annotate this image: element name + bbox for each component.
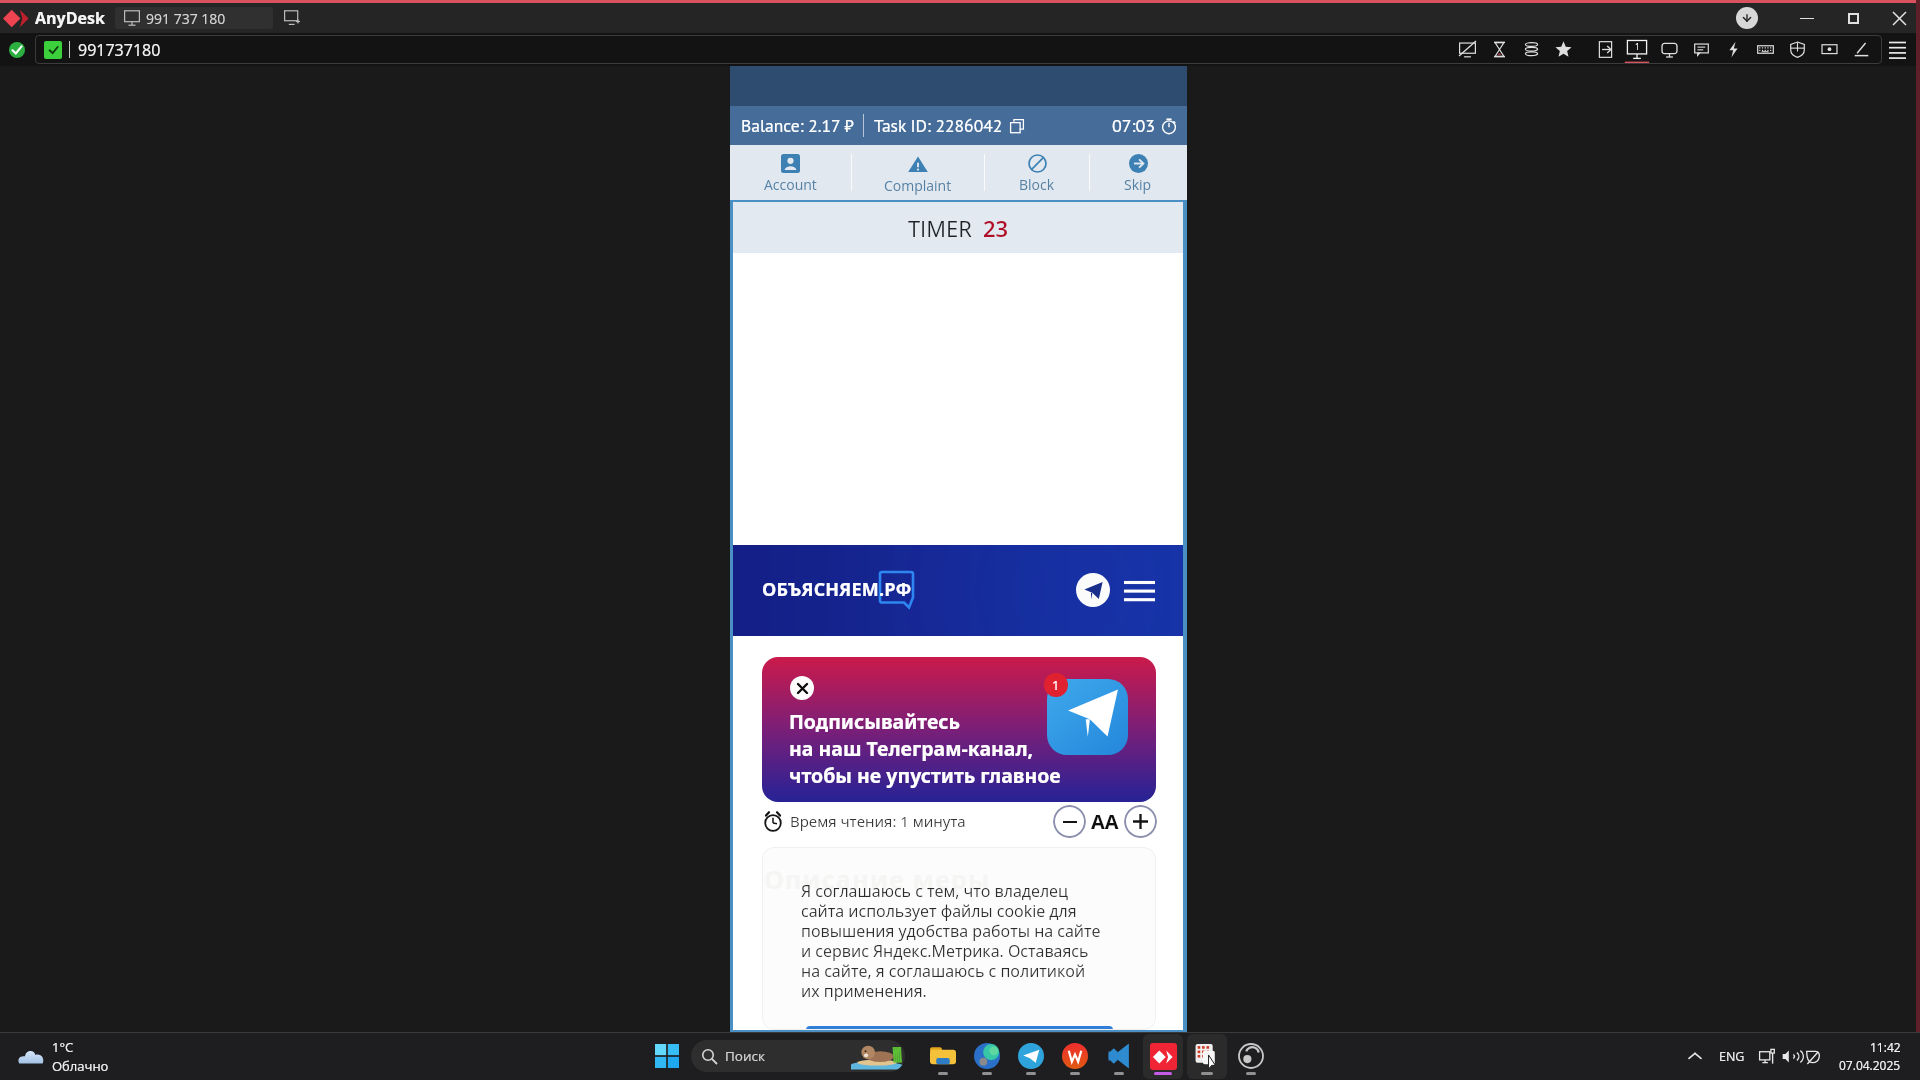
button[interactable]: Maximize	[1836, 3, 1870, 33]
button[interactable]: Visual Studio Code	[1097, 1032, 1141, 1080]
staticText: 1°C	[52, 1038, 74, 1056]
staticText: AA	[1091, 808, 1119, 835]
button[interactable]: Screenshot tool	[1185, 1032, 1229, 1080]
button[interactable]: Remote database	[1515, 35, 1547, 64]
staticText: Balance: 2.17 ₽	[741, 114, 854, 137]
staticText: TIMER	[908, 213, 972, 243]
button[interactable]: Privacy mode	[1451, 35, 1483, 64]
button[interactable]: Minimize	[1790, 3, 1824, 33]
staticText: чтобы не упустить главное	[789, 762, 1061, 789]
button[interactable]: File Explorer	[921, 1032, 965, 1080]
staticText: Время чтения: 1 минута	[790, 811, 966, 831]
button[interactable]: Menu	[1882, 33, 1913, 66]
staticText: 07:03	[1112, 114, 1156, 137]
button[interactable]: Network	[1756, 1045, 1778, 1067]
button[interactable]: Downloads	[1736, 7, 1758, 29]
button[interactable]: Keyboard	[1749, 35, 1781, 64]
button[interactable]: Volume	[1779, 1045, 1801, 1067]
button[interactable]: New session	[281, 7, 303, 29]
staticText: 991 737 180	[146, 9, 226, 28]
staticText: Я соглашаюсь с тем, что владелец сайта и…	[801, 880, 1105, 1002]
staticText: 23	[983, 213, 1009, 243]
button[interactable]: Accept	[806, 1026, 1113, 1030]
staticText: на наш Телеграм-канал,	[789, 735, 1034, 762]
button[interactable]: Decrease text size	[1053, 805, 1086, 838]
button[interactable]: Account	[730, 145, 851, 200]
staticText: Поиск	[725, 1047, 765, 1065]
button[interactable]: Monitor 1	[1621, 36, 1653, 64]
button[interactable]: Display	[1653, 35, 1685, 64]
button[interactable]: Telegram	[1009, 1032, 1053, 1080]
staticText: Task ID: 2286042	[874, 114, 1003, 137]
staticText: ОБЪЯСНЯЕМ.РФ	[762, 577, 912, 602]
staticText: ENG	[1719, 1048, 1745, 1065]
button[interactable]: Close	[1882, 3, 1916, 33]
button[interactable]: Favourite	[1547, 35, 1579, 64]
staticText: 11:42	[1870, 1039, 1901, 1055]
button[interactable]: AnyDesk	[1141, 1032, 1185, 1080]
staticText: Complaint	[884, 176, 952, 195]
button[interactable]: Microsoft Edge	[965, 1032, 1009, 1080]
button[interactable]: 991737180	[35, 35, 1882, 64]
staticText: 991737180	[78, 39, 161, 61]
staticText: Skip	[1124, 175, 1152, 194]
button[interactable]: Close banner	[762, 657, 1156, 802]
button[interactable]: Copy task id	[1008, 117, 1026, 135]
staticText: 1	[1052, 676, 1060, 694]
button[interactable]: Session time	[1483, 35, 1515, 64]
button[interactable]: Skip	[1090, 145, 1186, 200]
staticText: Account	[764, 175, 817, 194]
button[interactable]: Complaint	[852, 145, 984, 200]
button[interactable]: Actions	[1717, 35, 1749, 64]
button[interactable]: File transfer	[1589, 35, 1621, 64]
button[interactable]: Eco mode	[1802, 1045, 1824, 1067]
button[interactable]: Show hidden icons	[1684, 1045, 1706, 1067]
staticText: Облачно	[52, 1057, 109, 1075]
button[interactable]: Telegram channel	[1076, 573, 1110, 607]
staticText: 07.04.2025	[1839, 1057, 1901, 1073]
button[interactable]: Поиск	[691, 1040, 905, 1072]
button[interactable]: Record session	[1813, 35, 1845, 64]
button[interactable]: Connected	[4, 37, 30, 63]
staticText: AnyDesk	[35, 7, 105, 29]
button[interactable]: Close banner	[790, 676, 814, 700]
button[interactable]: Open menu	[1119, 570, 1159, 610]
button[interactable]: WPS Office	[1053, 1032, 1097, 1080]
button[interactable]: Block	[985, 145, 1089, 200]
button[interactable]: Permissions	[1781, 35, 1813, 64]
staticText: Описание меры	[764, 862, 991, 896]
button[interactable]: Whiteboard	[1845, 35, 1877, 64]
staticText: Block	[1019, 175, 1055, 194]
staticText: Подписывайтесь	[789, 708, 961, 735]
button[interactable]: Start	[652, 1041, 682, 1071]
button[interactable]: 991 737 180	[115, 7, 273, 29]
button[interactable]: Increase text size	[1124, 805, 1157, 838]
button[interactable]: OBS Studio	[1229, 1032, 1273, 1080]
staticText: 1	[1635, 41, 1640, 53]
staticText: Правительство продлило	[763, 662, 926, 680]
button[interactable]: Chat	[1685, 35, 1717, 64]
